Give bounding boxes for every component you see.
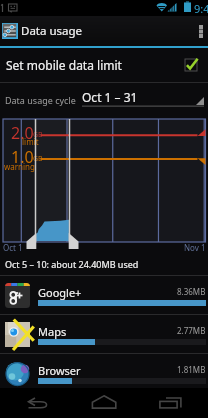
button[interactable]: Home	[80, 388, 128, 418]
staticText: Oct 1	[3, 242, 23, 253]
staticText: 8.36MB	[177, 286, 206, 297]
staticText: warning	[4, 161, 35, 172]
button[interactable]: More options	[194, 16, 208, 46]
button[interactable]: Set mobile data limit	[0, 48, 208, 82]
staticText: Set mobile data limit	[6, 57, 122, 73]
staticText: Browser	[38, 363, 81, 378]
button[interactable]: Browser	[0, 354, 208, 392]
staticText: limit	[22, 136, 39, 147]
staticText: Data usage cycle	[5, 94, 76, 106]
staticText: Data usage	[21, 23, 83, 39]
button[interactable]: Google+	[0, 276, 208, 314]
staticText: 2.77MB	[177, 325, 206, 336]
staticText: Maps	[38, 324, 67, 339]
staticText: Google+	[38, 285, 82, 300]
staticText: Nov 1	[184, 242, 206, 253]
button[interactable]: Settings	[1, 18, 18, 44]
staticText: Oct 5 – 10: about 24.40MB used	[5, 258, 139, 270]
staticText: GB	[33, 154, 43, 164]
button[interactable]: Maps	[0, 315, 208, 353]
staticText: GB	[33, 130, 43, 140]
staticText: Oct 1 – 31	[82, 89, 138, 105]
button[interactable]: Data usage cycle	[0, 83, 208, 117]
button[interactable]: Recent apps	[146, 388, 194, 418]
staticText: 1.81MB	[177, 364, 206, 375]
staticText: 2.0	[11, 122, 34, 144]
staticText: 1.0	[11, 146, 34, 168]
button[interactable]: Back	[14, 388, 62, 418]
staticText: 9:4	[194, 1, 208, 16]
